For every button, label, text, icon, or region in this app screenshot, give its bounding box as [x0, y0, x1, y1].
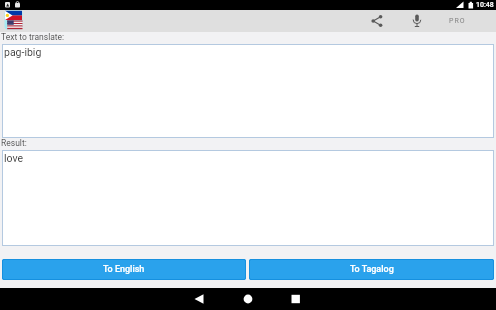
button[interactable] — [273, 288, 322, 310]
staticText: Text to translate: — [1, 32, 65, 42]
button[interactable]: PRO — [449, 10, 466, 32]
button[interactable] — [4, 10, 23, 30]
button[interactable]: pag-ibig — [2, 44, 494, 138]
staticText: Result: — [1, 138, 27, 148]
staticText: 10:48 — [476, 1, 494, 9]
button[interactable] — [366, 10, 388, 32]
button[interactable] — [224, 288, 273, 310]
button[interactable] — [406, 10, 428, 32]
staticText: To Tagalog — [350, 264, 394, 275]
staticText: pag-ibig — [4, 46, 42, 58]
staticText: To English — [103, 264, 145, 275]
button[interactable]: To Tagalog — [249, 259, 494, 280]
button[interactable]: love — [2, 150, 494, 246]
staticText: love — [4, 152, 24, 164]
staticText: PRO — [449, 17, 466, 25]
button[interactable]: To English — [2, 259, 246, 280]
button[interactable] — [175, 288, 224, 310]
